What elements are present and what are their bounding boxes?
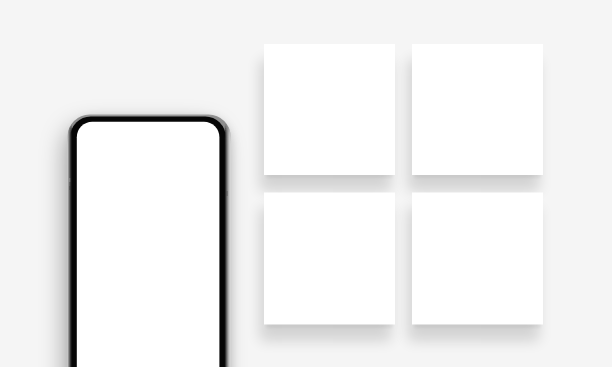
button[interactable]: Phone mockup preview: [69, 115, 228, 367]
